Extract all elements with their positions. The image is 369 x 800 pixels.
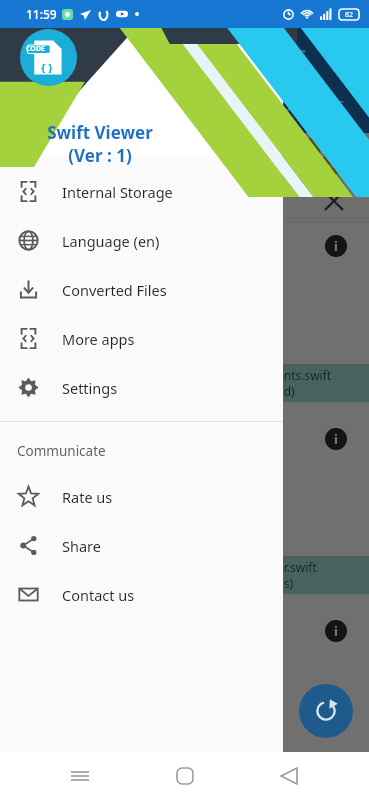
- staticText: Id: [319, 141, 335, 161]
- staticText: EPS: [238, 142, 263, 161]
- staticText: Communicate: [17, 442, 106, 460]
- staticText: i: [334, 430, 338, 448]
- staticText: er.swift: [277, 559, 317, 575]
- staticText: Internal Storage: [62, 182, 173, 202]
- staticText: Rate us: [62, 487, 113, 507]
- staticText: 82: [345, 10, 354, 20]
- staticText: (Ver : 1): [68, 144, 132, 167]
- button[interactable]: Back: [265, 752, 313, 800]
- staticText: ON FILES: [280, 95, 345, 115]
- button[interactable]: Language (en): [0, 216, 283, 265]
- button[interactable]: Contact us: [0, 570, 283, 619]
- button[interactable]: Internal Storage: [0, 167, 283, 216]
- button[interactable]: Rate us: [0, 472, 283, 521]
- button[interactable]: Settings: [0, 363, 283, 412]
- button[interactable]: Share: [0, 521, 283, 570]
- staticText: f: [296, 42, 305, 72]
- staticText: Contact us: [62, 585, 135, 605]
- staticText: Swift Viewer: [47, 121, 153, 144]
- staticText: ad): [277, 383, 295, 399]
- button[interactable]: Home: [161, 752, 209, 800]
- button[interactable]: Refresh: [299, 684, 353, 738]
- staticText: Converted Files: [62, 280, 167, 300]
- staticText: Viewer: [315, 161, 338, 171]
- button[interactable]: More apps: [0, 314, 283, 363]
- staticText: es): [277, 575, 294, 591]
- other: Close: [325, 192, 343, 210]
- staticText: Language (en): [62, 231, 160, 251]
- staticText: Settings: [62, 378, 118, 398]
- button[interactable]: Recents: [56, 752, 104, 800]
- staticText: ants.swift: [277, 367, 332, 383]
- staticText: CODE: [26, 44, 45, 54]
- staticText: 11:59: [26, 6, 57, 22]
- staticText: More apps: [62, 329, 135, 349]
- staticText: i: [334, 622, 338, 640]
- button[interactable]: Converted Files: [0, 265, 283, 314]
- staticText: i: [334, 237, 338, 255]
- staticText: Share: [62, 536, 101, 556]
- staticText: { }: [41, 60, 53, 75]
